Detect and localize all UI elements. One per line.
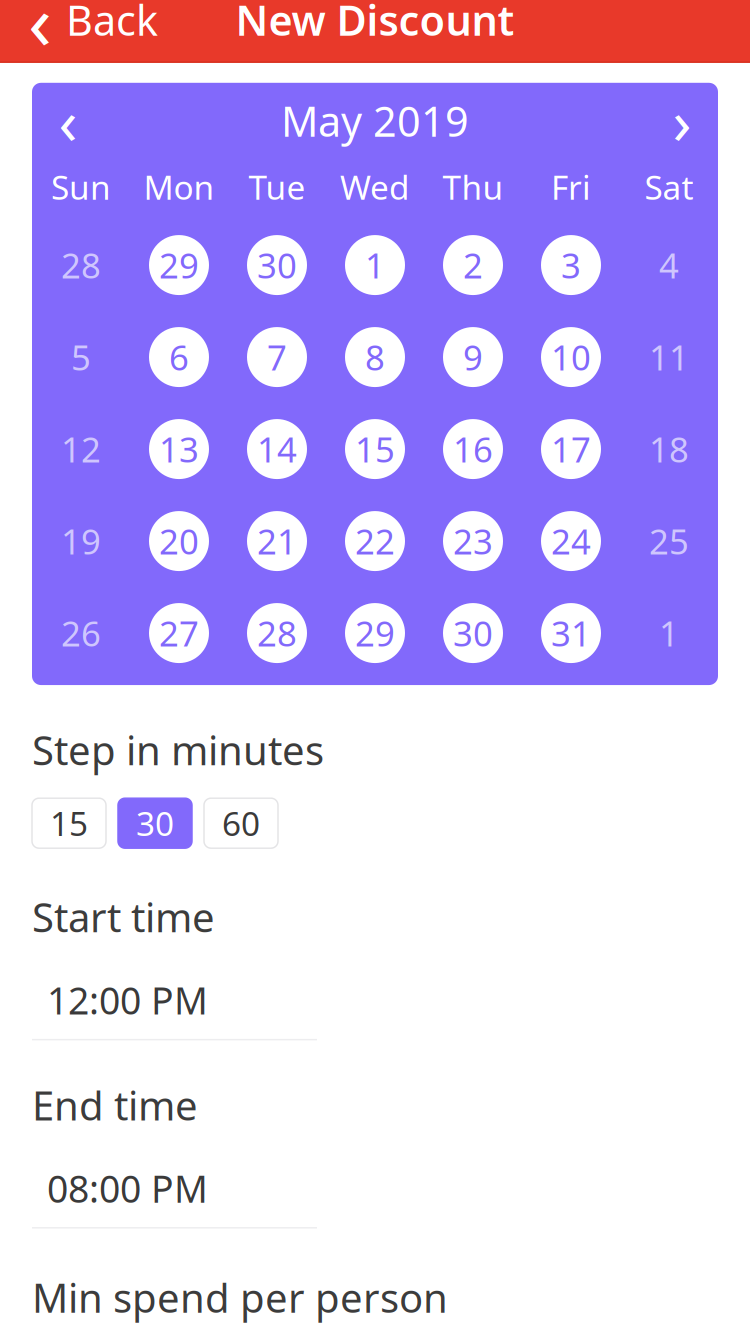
button[interactable]: 21 [229, 495, 325, 587]
button[interactable]: 30 [229, 219, 325, 311]
button[interactable]: 9 [425, 311, 521, 403]
button[interactable]: 17 [523, 403, 619, 495]
staticText: 14 [257, 426, 297, 472]
staticText: 60 [222, 801, 260, 845]
button[interactable]: 18 [621, 403, 717, 495]
staticText: 10 [551, 334, 591, 380]
staticText: 15 [355, 426, 395, 472]
staticText: 17 [551, 426, 591, 472]
button[interactable]: 26 [33, 587, 129, 679]
button[interactable]: 29 [131, 219, 227, 311]
button[interactable]: Previous month [32, 91, 104, 151]
staticText: New Discount [235, 0, 514, 47]
button[interactable]: 3 [523, 219, 619, 311]
staticText: 28 [61, 242, 101, 288]
button[interactable]: ‹ [0, 0, 158, 79]
button[interactable]: 20 [131, 495, 227, 587]
button[interactable]: 10 [523, 311, 619, 403]
staticText: 9 [463, 334, 483, 380]
staticText: Start time [32, 890, 215, 943]
button[interactable]: 1 [327, 219, 423, 311]
button[interactable]: 25 [621, 495, 717, 587]
staticText: 2 [463, 242, 483, 288]
staticText: 16 [453, 426, 493, 472]
staticText: ‹ [28, 0, 52, 71]
staticText: 24 [551, 518, 591, 564]
button[interactable]: 12:00 PM [0, 943, 750, 1040]
staticText: Wed [340, 165, 410, 209]
staticText: 4 [659, 242, 679, 288]
staticText: 28 [257, 610, 297, 656]
staticText: Tue [248, 165, 305, 209]
button[interactable]: 6 [131, 311, 227, 403]
staticText: 29 [355, 610, 395, 656]
button[interactable]: 2 [425, 219, 521, 311]
button[interactable]: 08:00 PM [0, 1131, 750, 1229]
staticText: Sun [51, 165, 111, 209]
staticText: 25 [649, 518, 689, 564]
button[interactable]: 5 [33, 311, 129, 403]
staticText: 29 [159, 242, 199, 288]
button[interactable]: 22 [327, 495, 423, 587]
staticText: 08:00 PM [47, 1163, 208, 1213]
staticText: Thu [442, 165, 503, 209]
staticText: 11 [649, 334, 689, 380]
staticText: 30 [136, 801, 174, 845]
staticText: 31 [551, 610, 591, 656]
button[interactable]: Next month [646, 91, 718, 151]
staticText: Min spend per person [32, 1271, 448, 1324]
staticText: Back [66, 0, 158, 47]
staticText: 15 [50, 801, 88, 845]
staticText: 22 [355, 518, 395, 564]
button[interactable]: 19 [33, 495, 129, 587]
button[interactable]: 30 [425, 587, 521, 679]
button[interactable]: 7 [229, 311, 325, 403]
staticText: Step in minutes [32, 723, 324, 776]
button[interactable]: 28 [33, 219, 129, 311]
staticText: ‹ [58, 80, 77, 161]
button[interactable]: 16 [425, 403, 521, 495]
button[interactable]: 12 [33, 403, 129, 495]
staticText: End time [32, 1078, 198, 1131]
button[interactable]: 15 [327, 403, 423, 495]
button[interactable]: 23 [425, 495, 521, 587]
staticText: 23 [453, 518, 493, 564]
button[interactable]: 30 [118, 798, 192, 848]
staticText: 8 [365, 334, 385, 380]
staticText: 6 [169, 334, 189, 380]
button[interactable]: 1 [621, 587, 717, 679]
staticText: 13 [159, 426, 199, 472]
staticText: 3 [561, 242, 581, 288]
staticText: 1 [365, 242, 385, 288]
staticText: 30 [257, 242, 297, 288]
button[interactable]: 8 [327, 311, 423, 403]
button[interactable]: 13 [131, 403, 227, 495]
staticText: 19 [61, 518, 101, 564]
staticText: 7 [267, 334, 287, 380]
button[interactable]: 27 [131, 587, 227, 679]
staticText: Fri [551, 165, 591, 209]
staticText: 26 [61, 610, 101, 656]
staticText: 18 [649, 426, 689, 472]
button[interactable]: 28 [229, 587, 325, 679]
staticText: May 2019 [281, 93, 469, 148]
button[interactable]: 4 [621, 219, 717, 311]
staticText: 5 [71, 334, 91, 380]
button[interactable]: 15 [32, 798, 106, 848]
staticText: 21 [257, 518, 297, 564]
button[interactable]: 29 [327, 587, 423, 679]
button[interactable]: 24 [523, 495, 619, 587]
staticText: › [672, 80, 691, 161]
button[interactable]: 31 [523, 587, 619, 679]
staticText: 27 [159, 610, 199, 656]
button[interactable]: 11 [621, 311, 717, 403]
button[interactable]: 60 [204, 798, 278, 848]
staticText: Mon [143, 165, 214, 209]
staticText: 1 [659, 610, 679, 656]
staticText: 12 [61, 426, 101, 472]
staticText: 30 [453, 610, 493, 656]
staticText: 12:00 PM [47, 975, 208, 1025]
staticText: 20 [159, 518, 199, 564]
button[interactable]: 14 [229, 403, 325, 495]
staticText: Sat [644, 165, 693, 209]
